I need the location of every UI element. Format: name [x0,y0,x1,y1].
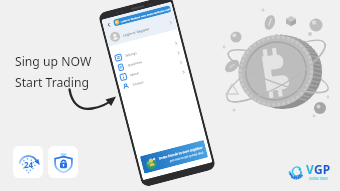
staticText: Contact [132,80,145,87]
staticText: Sing up NOW [15,53,92,70]
staticText: Invite friends to earn together [158,145,203,161]
staticText: Settings [125,51,137,58]
staticText: Login or Register [122,26,151,38]
button[interactable]: Contact [118,65,190,93]
button[interactable]: Login or Register now, Enjoy exclusive r… [113,5,172,26]
staticText: Login or Register now, Enjoy exclusive r… [120,7,171,23]
button[interactable]: About [115,56,188,83]
button[interactable]: Questions [113,46,185,74]
button[interactable]: VGP Trading logo [290,159,336,183]
button[interactable]: Invite friends to earn together [140,140,208,174]
button[interactable]: Settings [110,36,183,64]
staticText: Questions [127,60,143,67]
button[interactable]: Back [105,21,113,29]
staticText: About [130,71,139,77]
button[interactable]: 24 hour support [13,146,43,178]
staticText: V [306,161,314,177]
staticText: join now to get special deal [169,150,204,163]
staticText: Start Trading [15,74,89,91]
staticText: 24 [24,159,34,170]
staticText: GP [314,161,331,177]
staticText: GLOBAL TRADE [309,177,328,181]
button[interactable]: 100% secure [48,146,78,178]
button[interactable]: Login or Register [105,14,178,47]
